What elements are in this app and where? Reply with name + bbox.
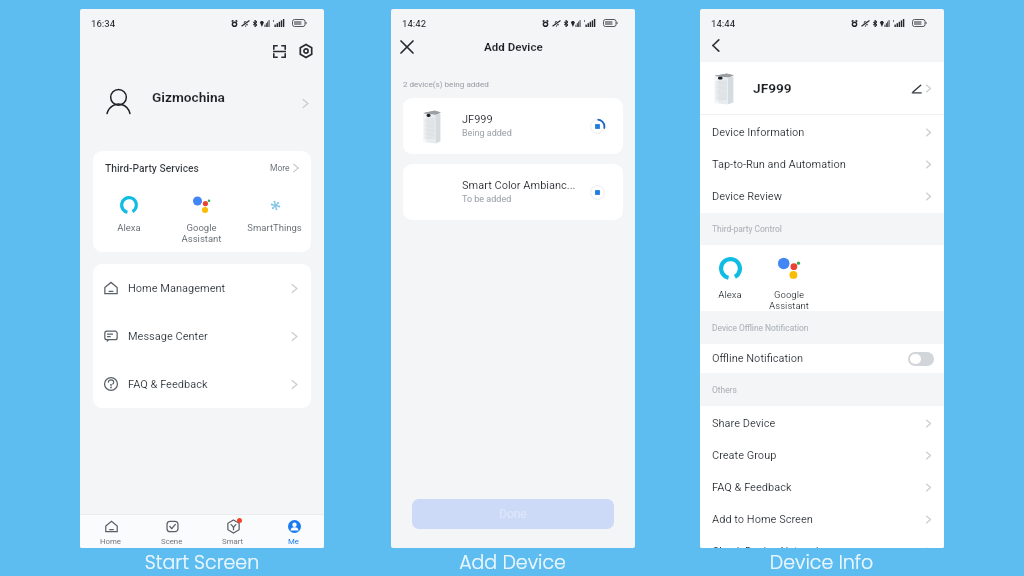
button[interactable]: SmartThings [238,195,311,233]
staticText: More [270,163,290,173]
staticText: Alexa [707,289,753,300]
button[interactable]: Settings [296,41,316,61]
staticText: 14:42 [402,18,427,29]
button[interactable]: Home Management [93,264,311,312]
staticText: Third-party Control [712,224,782,234]
staticText: Scene [161,537,183,546]
staticText: Device Info [700,549,943,576]
staticText: Device Review [712,190,782,203]
staticText: Start Screen [80,549,324,576]
staticText: Smart Color Ambianc... [462,179,576,192]
button[interactable]: Alexa [93,195,165,233]
button[interactable]: FAQ & Feedback [93,360,311,408]
button[interactable]: JF999 [403,98,623,154]
staticText: Create Group [712,449,777,462]
staticText: Me [288,537,299,546]
staticText: Smart [222,537,244,546]
staticText: Gizmochina [152,89,225,105]
staticText: Home Management [128,282,226,295]
staticText: 2 device(s) being added [403,79,489,88]
button[interactable]: Create Group [700,439,944,471]
staticText: Device Information [712,126,805,139]
button[interactable]: Add to Home Screen [700,503,944,535]
staticText: JF999 [753,80,792,96]
button[interactable]: Scene [141,515,202,548]
staticText: Google Assistant [766,289,812,311]
staticText: FAQ & Feedback [712,481,792,494]
staticText: Done [499,507,527,521]
staticText: 16:34 [91,18,116,29]
button[interactable]: Google Assistant [766,245,812,311]
button[interactable]: More [270,159,302,177]
button[interactable]: Home [80,515,141,548]
button[interactable]: Back [705,34,727,56]
staticText: To be added [462,194,512,205]
button[interactable]: Scan code [269,41,289,61]
button[interactable]: Message Center [93,312,311,360]
staticText: Device Offline Notification [712,323,809,333]
staticText: Others [712,385,737,395]
button[interactable]: Me [263,515,324,548]
button[interactable]: Done [412,499,614,529]
staticText: Offline Notification [712,352,804,365]
staticText: Tap-to-Run and Automation [712,158,846,171]
button[interactable]: Device Review [700,180,944,212]
button[interactable]: Google Assistant [165,195,238,244]
staticText: Alexa [93,222,165,233]
staticText: Share Device [712,417,776,430]
button[interactable]: Offline Notification [700,344,944,373]
button[interactable]: Smart [202,515,263,548]
button[interactable]: JF999 [700,62,944,114]
button[interactable]: Smart Color Ambianc... [403,164,623,220]
button[interactable]: Share Device [700,407,944,439]
staticText: Home [100,537,121,546]
staticText: FAQ & Feedback [128,378,208,391]
staticText: Third-Party Services [105,162,199,174]
staticText: Being added [462,128,512,139]
staticText: Add Device [391,549,634,576]
staticText: Message Center [128,330,208,343]
button[interactable]: Check Device Network [700,535,944,548]
staticText: Check Device Network [712,545,822,548]
button[interactable]: Tap-to-Run and Automation [700,148,944,180]
staticText: JF999 [462,113,493,126]
button[interactable]: Alexa [707,245,753,311]
button[interactable]: FAQ & Feedback [700,471,944,503]
staticText: SmartThings [238,222,311,233]
button[interactable]: Gizmochina [80,77,324,129]
staticText: Add to Home Screen [712,513,813,526]
staticText: Add Device [484,40,543,54]
staticText: Google Assistant [165,222,238,244]
staticText: 14:44 [711,18,736,29]
button[interactable]: Device Information [700,116,944,148]
button[interactable]: Close [396,36,418,58]
